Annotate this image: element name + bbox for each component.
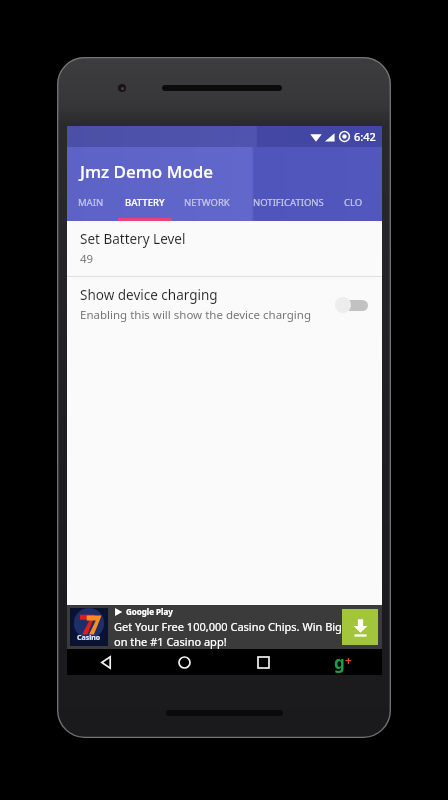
staticText: NOTIFICATIONS bbox=[253, 196, 324, 209]
button[interactable]: BATTERY bbox=[115, 193, 174, 221]
staticText: Get Your Free 100,000 Casino Chips. Win … bbox=[114, 619, 342, 634]
staticText: 6:42 bbox=[354, 129, 376, 144]
button[interactable]: NOTIFICATIONS bbox=[240, 193, 336, 221]
button[interactable]: CLO bbox=[336, 193, 370, 221]
staticText: Google Play bbox=[126, 606, 173, 617]
staticText: NETWORK bbox=[184, 196, 230, 209]
staticText: Casino bbox=[77, 633, 101, 643]
button[interactable]: MAIN bbox=[67, 193, 115, 221]
staticText: + bbox=[345, 652, 352, 668]
button[interactable]: Recent apps bbox=[224, 649, 303, 675]
button[interactable]: Home bbox=[145, 649, 224, 675]
button[interactable]: Jmz Demo Mode bbox=[67, 147, 382, 193]
button[interactable]: Google Plus bbox=[303, 649, 382, 675]
staticText: 49 bbox=[80, 251, 94, 267]
button[interactable]: NETWORK bbox=[174, 193, 240, 221]
staticText: BATTERY bbox=[125, 196, 165, 209]
button[interactable]: Show device charging bbox=[67, 277, 382, 332]
staticText: CLO bbox=[344, 196, 363, 209]
staticText: Jmz Demo Mode bbox=[80, 160, 213, 183]
staticText: Enabling this will show the device charg… bbox=[80, 307, 311, 323]
staticText: Show device charging bbox=[80, 286, 218, 304]
button[interactable]: Show device charging toggle bbox=[333, 292, 369, 318]
staticText: MAIN bbox=[78, 196, 104, 209]
button[interactable]: Set Battery Level bbox=[67, 221, 382, 276]
staticText: on the #1 Casino app! bbox=[114, 634, 227, 649]
button[interactable]: Casino bbox=[67, 605, 382, 649]
staticText: g bbox=[334, 651, 345, 674]
button[interactable]: Back bbox=[67, 649, 145, 675]
staticText: Set Battery Level bbox=[80, 230, 186, 248]
button[interactable]: Install bbox=[342, 609, 378, 645]
